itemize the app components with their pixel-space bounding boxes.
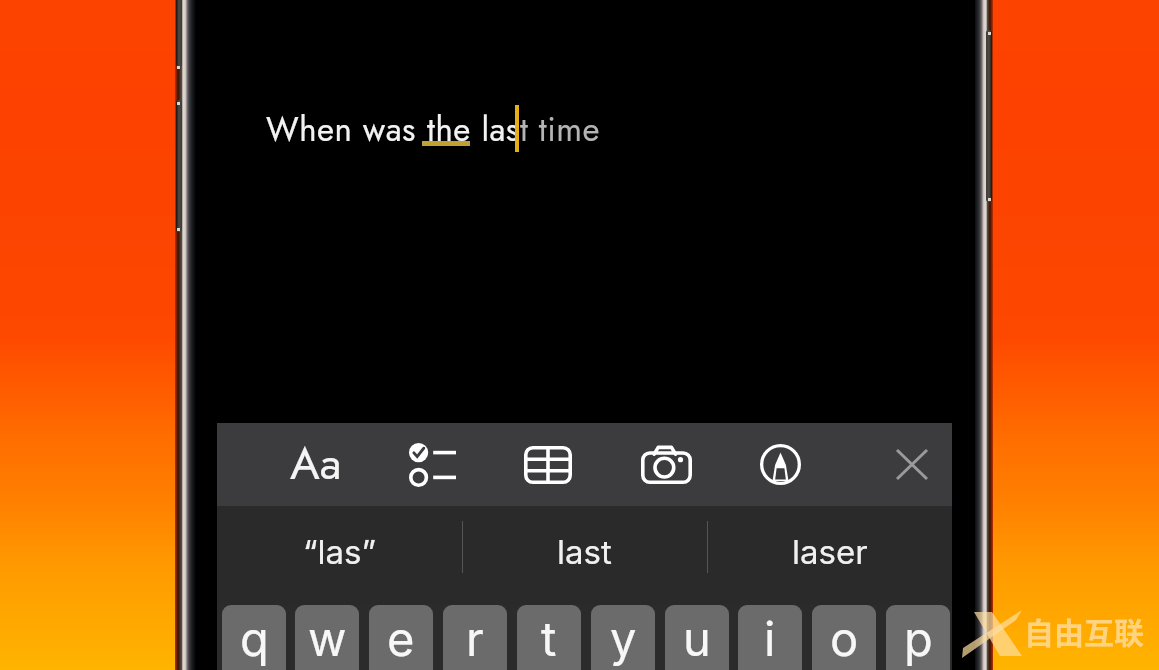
staticText: i <box>764 610 776 667</box>
staticText: r <box>466 610 484 667</box>
staticText: the <box>427 106 471 154</box>
button[interactable]: Close <box>872 423 952 506</box>
button[interactable]: y <box>591 605 655 670</box>
staticText: t <box>541 610 557 667</box>
button[interactable]: “las” <box>217 506 462 605</box>
button[interactable]: o <box>812 605 876 670</box>
button[interactable]: last <box>462 506 707 605</box>
button[interactable]: u <box>665 605 729 670</box>
button[interactable]: w <box>295 605 359 670</box>
button[interactable]: Camera <box>626 423 706 506</box>
button[interactable]: e <box>369 605 433 670</box>
staticText: “las” <box>303 532 377 572</box>
staticText: u <box>683 610 711 667</box>
button[interactable]: laser <box>707 506 952 605</box>
button[interactable]: t <box>517 605 581 670</box>
button[interactable]: p <box>886 605 950 670</box>
staticText: p <box>904 610 933 667</box>
staticText: e <box>387 610 415 667</box>
button[interactable]: Checklist <box>392 423 472 506</box>
button[interactable]: Markup <box>740 423 820 506</box>
staticText: last <box>557 532 612 572</box>
staticText: When was <box>266 106 427 154</box>
staticText: 自由互联 <box>1024 609 1144 652</box>
button[interactable]: q <box>222 605 286 670</box>
staticText: q <box>240 610 269 667</box>
button[interactable]: Table <box>508 423 588 506</box>
staticText: y <box>610 610 637 667</box>
button[interactable]: r <box>443 605 507 670</box>
staticText: las <box>471 106 520 154</box>
staticText: laser <box>792 532 868 572</box>
staticText: t time <box>520 106 601 154</box>
staticText: o <box>830 610 859 667</box>
staticText: w <box>308 610 347 667</box>
staticText: Aa <box>290 431 342 496</box>
button[interactable]: i <box>738 605 802 670</box>
button[interactable]: Text format <box>276 423 356 506</box>
